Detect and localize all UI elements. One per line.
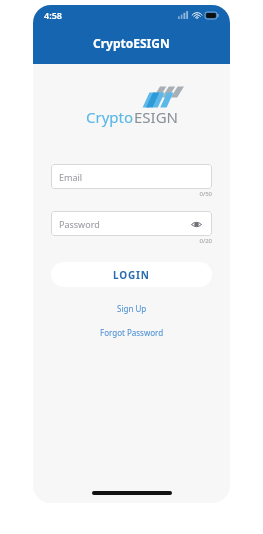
button[interactable]: Forgot Password	[92, 325, 172, 340]
button[interactable]: Sign Up	[109, 301, 155, 316]
staticText: LOGIN	[113, 268, 150, 282]
staticText: 4:58	[44, 9, 62, 21]
staticText: Email	[59, 171, 83, 183]
button[interactable]: LOGIN	[51, 262, 212, 287]
staticText: ESIGN	[134, 107, 178, 127]
staticText: Crypto	[86, 107, 134, 127]
staticText: 0/50	[51, 190, 212, 198]
button[interactable]: Email	[51, 164, 212, 189]
staticText: CryptoESIGN	[93, 35, 170, 51]
button[interactable]: Password	[51, 211, 212, 236]
staticText: Sign Up	[117, 303, 147, 314]
staticText: Password	[59, 218, 100, 230]
staticText: 0/20	[51, 237, 212, 245]
button[interactable]: Show password	[188, 216, 204, 232]
staticText: Forgot Password	[100, 327, 164, 338]
